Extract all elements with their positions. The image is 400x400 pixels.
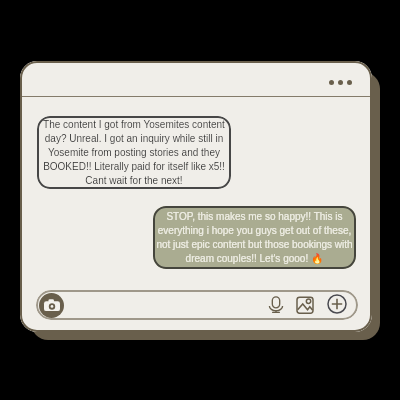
staticText: The content I got from Yosemites content… <box>43 119 225 186</box>
button[interactable]: Photo <box>295 294 315 314</box>
button[interactable]: STOP, this makes me so happy!! This is e… <box>153 206 356 269</box>
button[interactable]: Camera <box>39 293 64 318</box>
staticText: STOP, this makes me so happy!! This is e… <box>156 211 353 264</box>
button[interactable]: More options <box>327 294 347 314</box>
button[interactable]: The content I got from Yosemites content… <box>37 116 231 189</box>
button[interactable]: Voice message <box>266 294 286 314</box>
